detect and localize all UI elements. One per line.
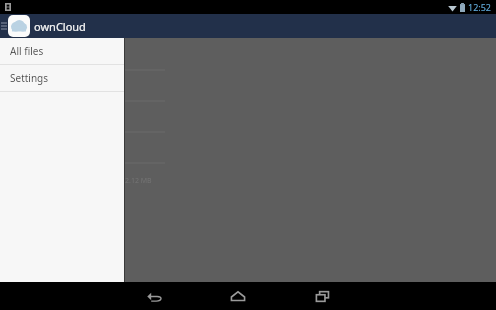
button[interactable]: Settings bbox=[0, 65, 124, 91]
button[interactable]: Home bbox=[214, 282, 262, 310]
button[interactable]: Back bbox=[130, 282, 178, 310]
staticText: 2.12 MB bbox=[125, 176, 152, 186]
staticText: ownCloud bbox=[34, 19, 86, 34]
staticText: All files bbox=[10, 44, 44, 58]
button[interactable]: Recent apps bbox=[298, 282, 346, 310]
staticText: Settings bbox=[10, 71, 49, 85]
staticText: 12:52 bbox=[468, 1, 492, 13]
button[interactable]: All files bbox=[0, 38, 124, 64]
button[interactable]: Open navigation drawer bbox=[0, 14, 8, 38]
